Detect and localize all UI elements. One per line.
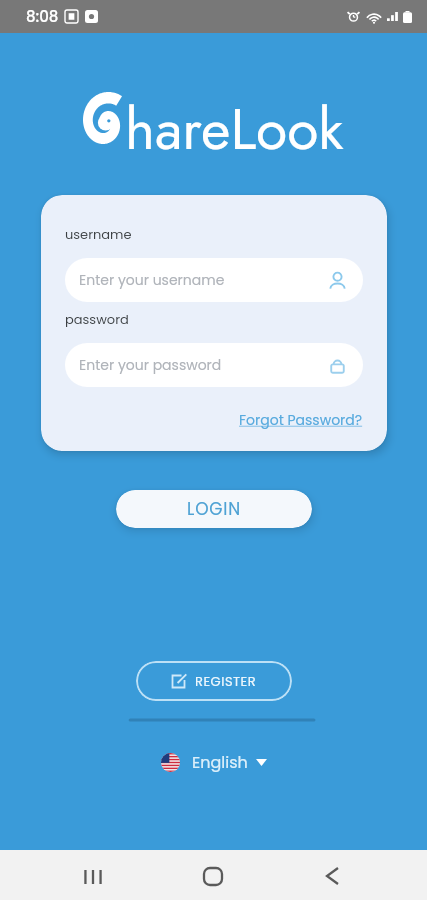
button[interactable]: LOGIN bbox=[116, 490, 312, 528]
staticText: Enter your password bbox=[79, 355, 222, 375]
button[interactable]: English bbox=[161, 751, 267, 773]
staticText: 8:08 bbox=[26, 6, 59, 27]
other: Password bbox=[222, 356, 347, 375]
button[interactable]: Home bbox=[183, 850, 243, 900]
staticText: English bbox=[192, 751, 248, 773]
button[interactable]: Back bbox=[302, 850, 362, 900]
button[interactable]: Recent apps bbox=[63, 850, 123, 900]
button[interactable]: Enter your password bbox=[65, 343, 363, 387]
staticText: LOGIN bbox=[187, 497, 242, 521]
button[interactable]: REGISTER bbox=[136, 661, 292, 701]
staticText: username bbox=[65, 225, 132, 243]
staticText: hareLook bbox=[125, 88, 344, 170]
staticText: Enter your username bbox=[79, 270, 225, 290]
button[interactable]: Forgot Password? bbox=[239, 410, 363, 430]
button[interactable]: Enter your username bbox=[65, 258, 363, 302]
staticText: password bbox=[65, 310, 129, 328]
other: Username bbox=[225, 271, 347, 290]
staticText: REGISTER bbox=[195, 672, 257, 690]
